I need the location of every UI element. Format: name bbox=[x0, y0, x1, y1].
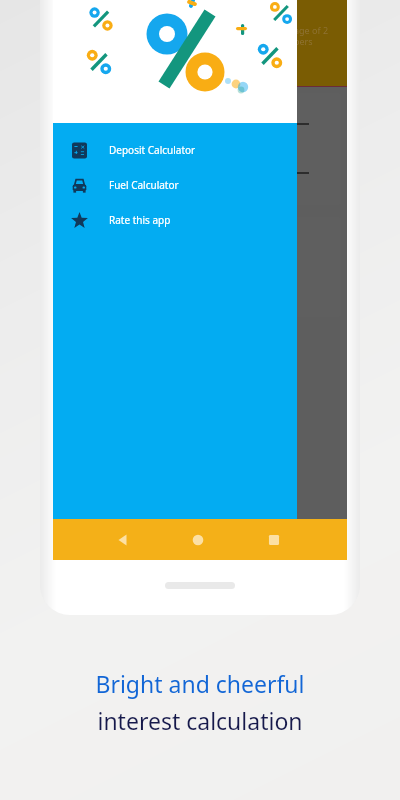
staticText: Rate this app bbox=[109, 213, 171, 227]
other: Rate this app bbox=[71, 212, 88, 229]
button[interactable]: Back bbox=[115, 532, 131, 548]
staticText: interest calculation bbox=[97, 705, 303, 736]
button[interactable]: Rate this app bbox=[53, 202, 297, 237]
button[interactable]: Home bbox=[191, 533, 205, 547]
button[interactable]: Fuel Calculator bbox=[53, 167, 297, 202]
staticText: Bright and cheerful bbox=[95, 668, 305, 699]
other: Fuel Calculator bbox=[71, 177, 88, 194]
staticText: Deposit Calculator bbox=[109, 143, 196, 157]
staticText: Fuel Calculator bbox=[109, 178, 179, 192]
button[interactable]: Recent apps bbox=[267, 533, 281, 547]
other: Deposit Calculator bbox=[71, 142, 88, 159]
button[interactable]: Deposit Calculator bbox=[53, 132, 297, 167]
staticText: age of 2 bers bbox=[294, 24, 329, 48]
